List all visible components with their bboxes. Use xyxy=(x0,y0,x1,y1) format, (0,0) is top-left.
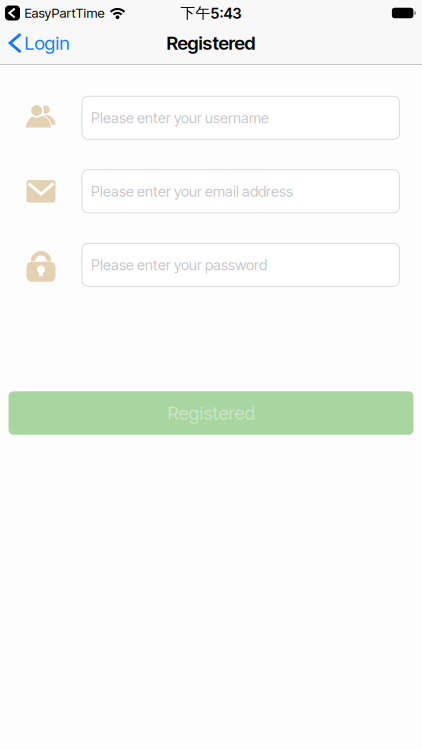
button[interactable]: Please enter your password xyxy=(81,243,400,287)
staticText: Please enter your username xyxy=(91,109,269,126)
staticText: 下午5:43 xyxy=(180,4,241,22)
button[interactable]: Registered xyxy=(8,391,413,435)
button[interactable]: Please enter your username xyxy=(81,96,400,140)
staticText: Registered xyxy=(166,32,255,54)
staticText: Registered xyxy=(167,402,254,424)
button[interactable]: Please enter your email address xyxy=(81,169,400,213)
staticText: Please enter your email address xyxy=(91,183,293,200)
button[interactable]: Back to Login xyxy=(10,32,69,54)
staticText: EasyPartTime xyxy=(24,5,104,21)
staticText: Login xyxy=(24,32,69,54)
staticText: Please enter your password xyxy=(91,256,267,273)
button[interactable]: Back to EasyPartTime xyxy=(5,5,126,21)
